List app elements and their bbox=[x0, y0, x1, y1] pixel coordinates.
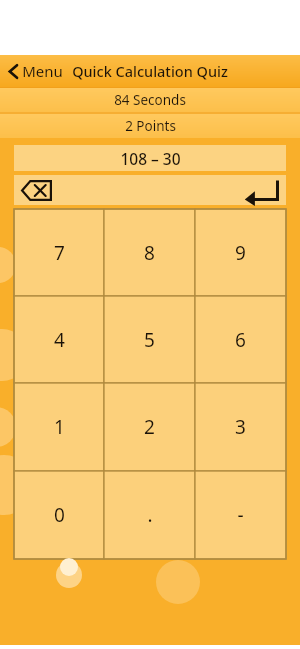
staticText: - bbox=[237, 502, 244, 528]
staticText: 2 bbox=[144, 414, 155, 440]
staticText: 84 Seconds bbox=[114, 91, 186, 109]
staticText: 2 Points bbox=[125, 117, 176, 135]
button[interactable]: 1 bbox=[14, 383, 104, 471]
staticText: 5 bbox=[144, 327, 155, 353]
staticText: Menu bbox=[22, 61, 63, 81]
button[interactable]: 0 bbox=[14, 471, 104, 559]
button[interactable]: . bbox=[104, 471, 195, 559]
button[interactable]: 5 bbox=[104, 296, 195, 383]
button[interactable]: 6 bbox=[195, 296, 286, 383]
staticText: 3 bbox=[235, 414, 246, 440]
button[interactable]: - bbox=[195, 471, 286, 559]
button[interactable]: Enter bbox=[240, 176, 282, 204]
button[interactable]: 3 bbox=[195, 383, 286, 471]
button[interactable]: 4 bbox=[14, 296, 104, 383]
button[interactable]: 2 bbox=[104, 383, 195, 471]
staticText: Quick Calculation Quiz bbox=[72, 61, 228, 81]
button[interactable]: Menu bbox=[8, 61, 63, 81]
staticText: 6 bbox=[235, 327, 246, 353]
staticText: 108 – 30 bbox=[120, 148, 181, 169]
staticText: 4 bbox=[54, 327, 65, 353]
button[interactable]: 9 bbox=[195, 209, 286, 296]
staticText: 7 bbox=[54, 240, 65, 266]
staticText: 0 bbox=[54, 502, 65, 528]
staticText: 8 bbox=[144, 240, 155, 266]
staticText: 1 bbox=[54, 414, 65, 440]
button[interactable]: 7 bbox=[14, 209, 104, 296]
button[interactable]: 8 bbox=[104, 209, 195, 296]
button[interactable]: Backspace bbox=[18, 177, 54, 203]
staticText: 9 bbox=[235, 240, 246, 266]
staticText: . bbox=[147, 502, 153, 528]
